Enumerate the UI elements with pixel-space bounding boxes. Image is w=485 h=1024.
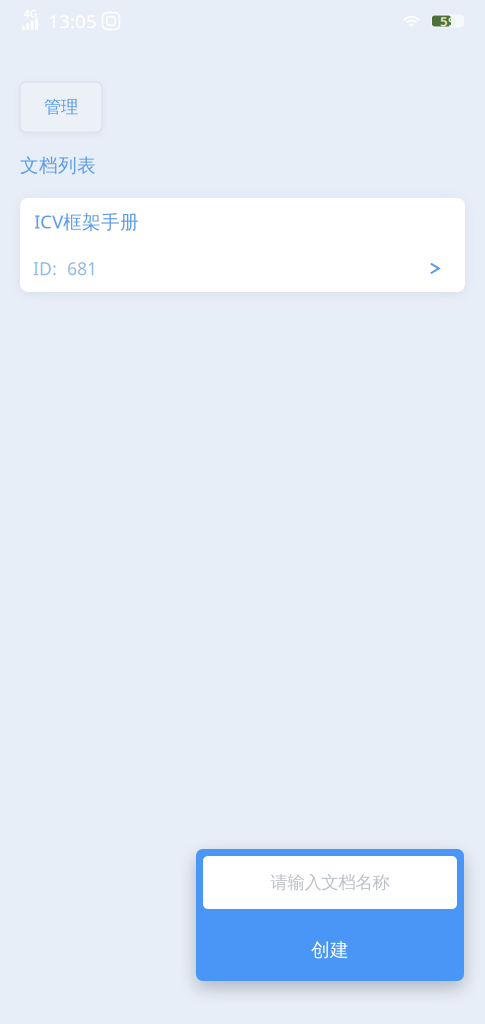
button[interactable]: 创建 [196,914,464,986]
staticText: 59 [440,12,456,30]
staticText: 文档列表 [20,154,96,177]
staticText: ICV框架手册 [34,209,139,234]
button[interactable]: 管理 [20,82,102,132]
staticText: 创建 [311,938,349,961]
staticText: 管理 [44,96,78,118]
staticText: ID: 681 [33,257,97,280]
button[interactable]: 请输入文档名称 [203,856,457,909]
button[interactable]: ICV框架手册 [20,198,465,292]
staticText: 请输入文档名称 [270,872,389,893]
staticText: 4G [23,7,37,21]
staticText: 13:05 [48,9,97,33]
